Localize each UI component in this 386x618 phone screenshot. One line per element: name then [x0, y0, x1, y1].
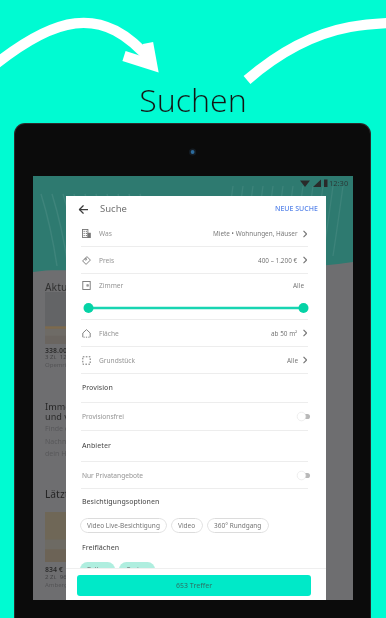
button[interactable]: NEUE SUCHE	[275, 204, 326, 214]
staticText: ab 50 m²	[271, 329, 298, 338]
staticText: Provision	[82, 383, 113, 393]
staticText: Lätzte Suchen	[45, 487, 112, 501]
button[interactable]: Preis	[82, 247, 308, 273]
button[interactable]: Balkon	[80, 562, 115, 577]
staticText: Opemring	[45, 361, 74, 369]
staticText: Zimmer	[99, 281, 124, 290]
staticText: Suchen	[0, 78, 386, 122]
staticText: Video	[178, 521, 196, 530]
button[interactable]: Zimmer	[82, 274, 308, 296]
button[interactable]: 653 Treffer	[77, 575, 311, 596]
staticText: Was	[99, 229, 112, 238]
staticText: Nur Privatangebote	[82, 471, 144, 480]
staticText: 653 Treffer	[176, 581, 213, 591]
button[interactable]: Was	[82, 221, 308, 246]
staticText: Freiflächen	[82, 543, 120, 553]
staticText: Grundstück	[99, 356, 136, 365]
button[interactable]: Video Live-Besichtigung	[80, 518, 167, 533]
button[interactable]: Fläche	[82, 320, 308, 346]
staticText: Provisionsfrei	[82, 412, 124, 421]
staticText: 338.000 €	[45, 346, 77, 356]
button[interactable]: Back	[75, 201, 91, 217]
staticText: Miete • Wohnungen, Häuser	[213, 229, 298, 238]
button[interactable]: 360° Rundgang	[207, 518, 269, 533]
staticText: dein Haus.	[45, 449, 80, 459]
staticText: Immobilien finden	[45, 400, 125, 412]
button[interactable]: Nur Privatangebote	[82, 462, 310, 488]
staticText: 834 €	[45, 565, 63, 575]
staticText: Nachmieter oder	[45, 437, 101, 447]
staticText: Garten	[126, 565, 148, 574]
staticText: Alle	[287, 356, 298, 365]
staticText: 360° Rundgang	[214, 521, 262, 530]
button[interactable]: Garten	[119, 562, 155, 577]
staticText: Aktuelle Immobilien	[45, 280, 142, 294]
staticText: Balkon	[87, 565, 108, 574]
staticText: NEUE SUCHE	[275, 204, 318, 214]
staticText: 3 Zi. 120 m²	[45, 353, 80, 361]
staticText: und verkaufen	[45, 410, 108, 422]
staticText: 12:30	[329, 178, 349, 188]
staticText: Anbieter	[82, 441, 111, 451]
staticText: Besichtigungsoptionen	[82, 497, 160, 507]
staticText: Finde einfach und	[45, 424, 104, 434]
staticText: 400 – 1.200 €	[258, 256, 298, 265]
staticText: Video Live-Besichtigung	[87, 521, 160, 530]
staticText: Amberg	[45, 581, 68, 589]
staticText: 2 Zi. 96 m²	[45, 573, 76, 581]
button[interactable]: Grundstück	[82, 347, 308, 373]
staticText: Fläche	[99, 329, 119, 338]
staticText: Suche	[100, 202, 127, 215]
button[interactable]: Video	[171, 518, 203, 533]
button[interactable]: Provisionsfrei	[82, 403, 310, 430]
staticText: Preis	[99, 256, 115, 265]
staticText: Alle	[293, 281, 304, 290]
